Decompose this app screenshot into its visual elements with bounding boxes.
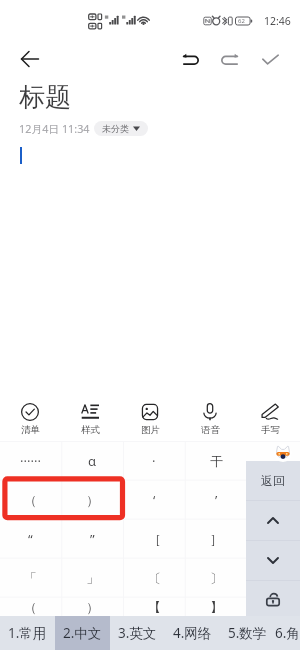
staticText: 【	[148, 599, 161, 615]
button[interactable]: 」	[61, 558, 123, 597]
staticText: ······	[20, 452, 41, 470]
button[interactable]: Back	[14, 44, 46, 74]
button[interactable]: ［	[123, 519, 185, 558]
button[interactable]: 「	[0, 558, 61, 597]
staticText: 未分类	[102, 123, 129, 134]
button[interactable]: 图片	[120, 393, 180, 441]
button[interactable]: 6.角	[275, 616, 300, 650]
staticText: 干	[210, 453, 223, 469]
button[interactable]: 返回	[246, 461, 300, 500]
button[interactable]: 2.中文	[55, 616, 110, 650]
button[interactable]: Done	[254, 44, 287, 74]
button[interactable]: （	[0, 597, 61, 616]
button[interactable]: Lock	[246, 581, 300, 616]
staticText: 「	[24, 570, 37, 586]
button[interactable]: 手写	[240, 393, 300, 441]
staticText: （	[24, 492, 37, 508]
button[interactable]: “	[0, 519, 61, 558]
button[interactable]: Redo	[213, 44, 246, 74]
staticText: 清单	[21, 424, 40, 436]
staticText: 」	[86, 570, 99, 586]
button[interactable]: ”	[61, 519, 123, 558]
staticText: 4.网络	[173, 624, 212, 642]
staticText: 1.常用	[8, 624, 47, 642]
button[interactable]: 未分类	[94, 121, 148, 136]
button[interactable]: 1.常用	[0, 616, 55, 650]
staticText: ·	[152, 452, 156, 470]
staticText: 5.数学	[228, 624, 267, 642]
button[interactable]: Page down	[246, 541, 300, 580]
staticText: 12:46	[264, 14, 291, 28]
button[interactable]: 清单	[0, 393, 60, 441]
staticText: 图片	[141, 424, 160, 436]
staticText: 语音	[201, 424, 220, 436]
button[interactable]: 语音	[180, 393, 240, 441]
button[interactable]: 【	[123, 597, 185, 616]
button[interactable]: ’	[185, 480, 247, 519]
staticText: 6.角	[275, 624, 300, 642]
staticText: 3.英文	[118, 624, 157, 642]
staticText: ‘	[153, 491, 156, 509]
staticText: 12月4日 11:34	[19, 121, 90, 136]
button[interactable]: 5.数学	[220, 616, 275, 650]
staticText: α	[88, 452, 97, 470]
button[interactable]: α	[61, 441, 123, 480]
staticText: 62	[238, 17, 245, 25]
button[interactable]: Input method	[274, 444, 292, 462]
button[interactable]: （	[0, 480, 61, 519]
button[interactable]: 4.网络	[165, 616, 220, 650]
button[interactable]: 〕	[185, 558, 247, 597]
staticText: 标题	[19, 81, 71, 114]
button[interactable]: ）	[61, 597, 123, 616]
staticText: 〕	[210, 570, 223, 586]
button[interactable]: Undo	[174, 44, 207, 74]
staticText: ）	[86, 599, 99, 615]
staticText: 手写	[261, 424, 280, 436]
staticText: 〔	[148, 570, 161, 586]
button[interactable]: 样式	[60, 393, 120, 441]
button[interactable]: Page up	[246, 501, 300, 540]
button[interactable]: 〔	[123, 558, 185, 597]
staticText: ”	[90, 530, 95, 548]
button[interactable]: ］	[185, 519, 247, 558]
button[interactable]: ·	[123, 441, 185, 480]
staticText: （	[24, 599, 37, 615]
staticText: ［	[148, 531, 161, 547]
staticText: ’	[215, 491, 218, 509]
staticText: 】	[210, 599, 223, 615]
button[interactable]: 】	[185, 597, 247, 616]
staticText: ）	[86, 492, 99, 508]
button[interactable]: ）	[61, 480, 123, 519]
button[interactable]: ······	[0, 441, 61, 480]
button[interactable]: 3.英文	[110, 616, 165, 650]
button[interactable]: 干	[185, 441, 247, 480]
staticText: ］	[210, 531, 223, 547]
staticText: 2.中文	[63, 624, 102, 642]
staticText: “	[28, 530, 33, 548]
button[interactable]: ‘	[123, 480, 185, 519]
staticText: 返回	[261, 473, 285, 488]
staticText: 样式	[81, 424, 100, 436]
